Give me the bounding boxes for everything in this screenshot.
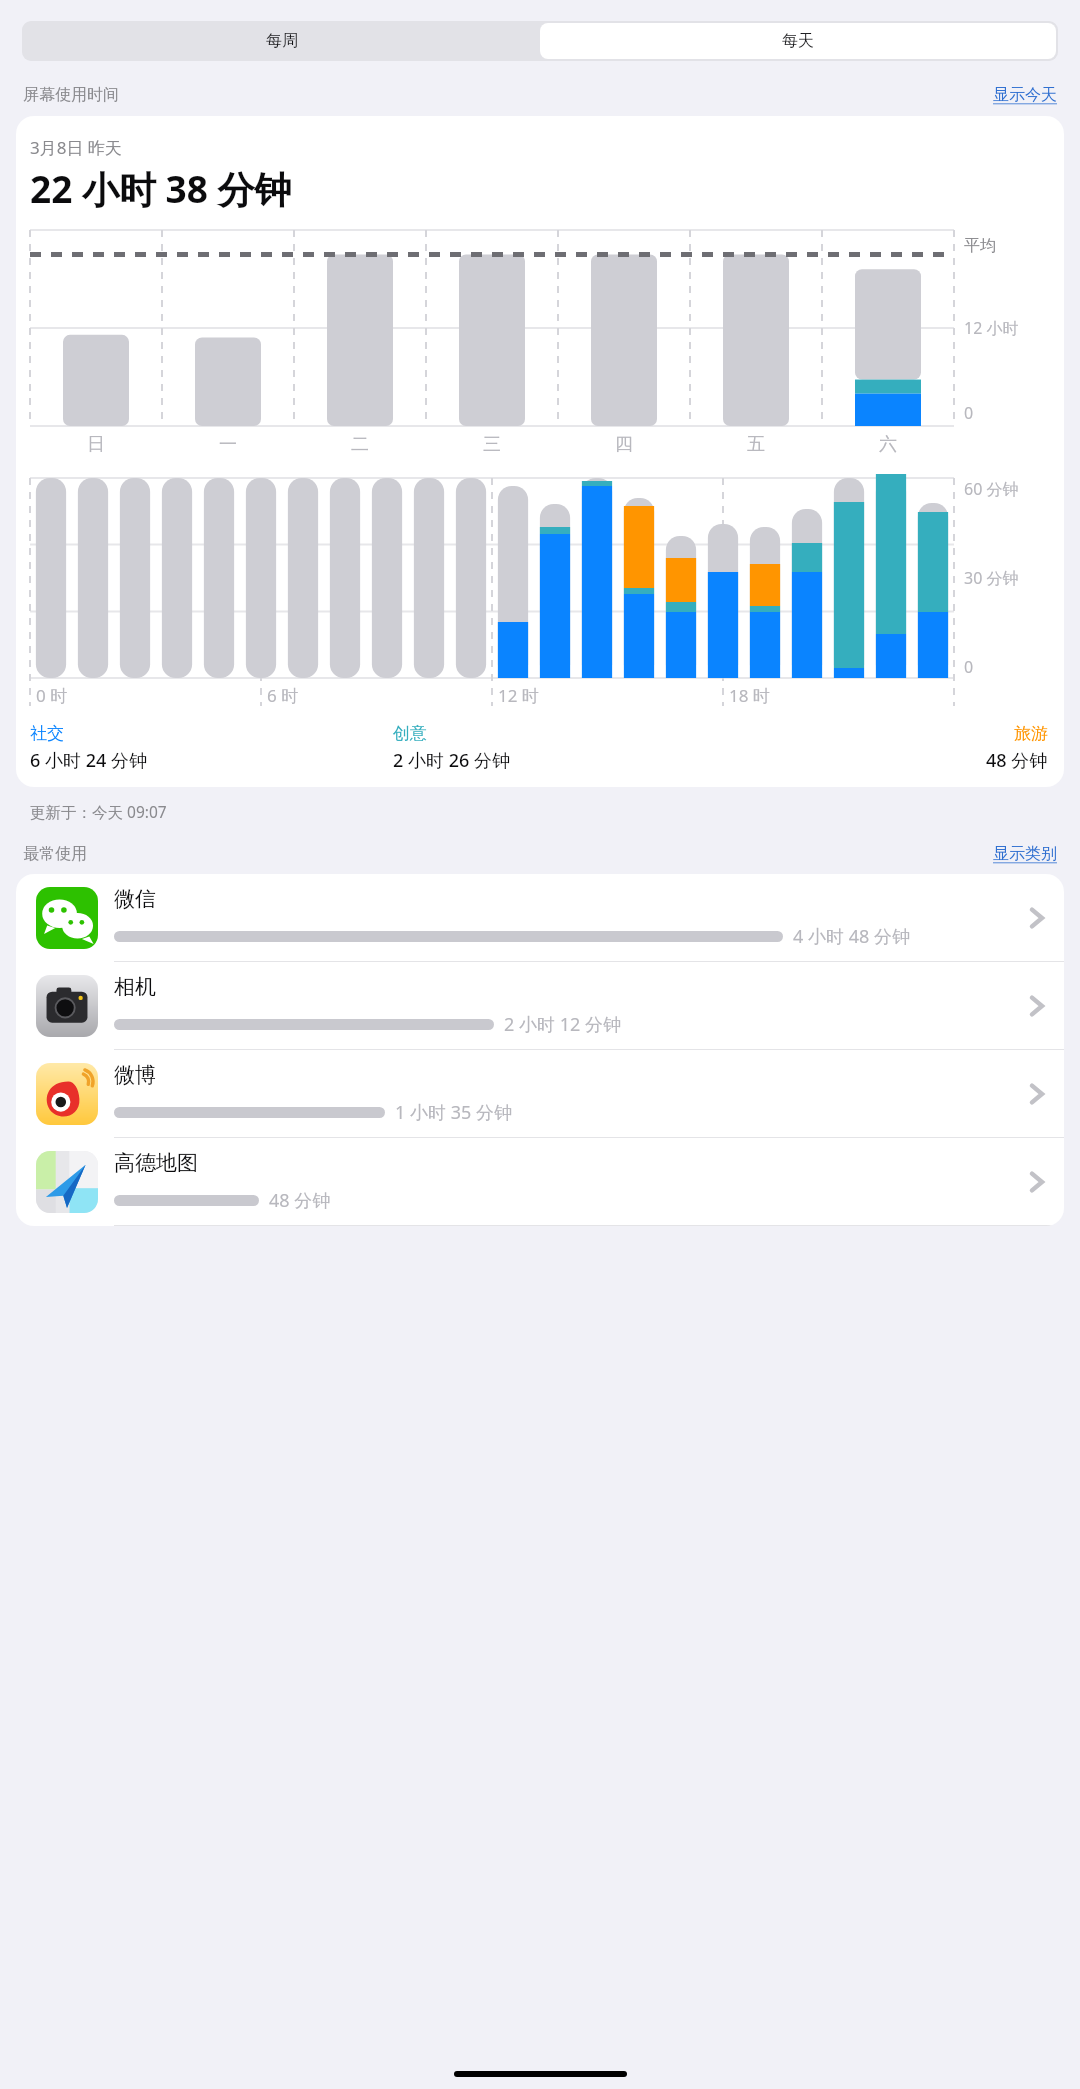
staticText: 创意 [393,723,427,744]
staticText: 高德地图 [114,1150,198,1176]
staticText: 每周 [266,31,298,51]
staticText: 二 [351,433,369,456]
staticText: 每天 [782,31,814,51]
staticText: 日 [87,433,105,456]
staticText: 18 时 [729,684,770,707]
other: 查看 微信 详情 [1024,905,1050,931]
button[interactable]: 显示类别 [993,844,1057,864]
staticText: 2 小时 12 分钟 [504,1012,621,1037]
staticText: 22 小时 38 分钟 [30,163,292,214]
staticText: 旅游 [1014,723,1048,744]
staticText: 12 小时 [964,317,1019,339]
staticText: 微信 [114,886,156,912]
staticText: 显示类别 [993,844,1057,864]
staticText: 显示今天 [993,85,1057,105]
staticText: 6 小时 24 分钟 [30,748,147,773]
button[interactable]: 相机 [16,962,1064,1049]
staticText: 微博 [114,1062,156,1088]
button[interactable]: 显示今天 [993,85,1057,105]
staticText: 30 分钟 [964,567,1019,589]
button[interactable]: 社交 [30,723,393,773]
staticText: 最常使用 [23,844,87,864]
staticText: 相机 [114,974,156,1000]
button[interactable]: 创意 [393,723,757,773]
staticText: 0 [964,656,974,678]
staticText: 48 分钟 [269,1188,331,1213]
staticText: 六 [879,433,897,456]
other: 查看 相机 详情 [1024,993,1050,1019]
staticText: 平均 [964,236,996,256]
staticText: 0 时 [36,684,68,707]
staticText: 48 分钟 [986,748,1048,773]
staticText: 三 [483,433,501,456]
button[interactable]: 高德地图 [16,1138,1064,1225]
staticText: 60 分钟 [964,478,1019,500]
button[interactable]: 3月8日 昨天 [16,116,1064,787]
staticText: 社交 [30,723,64,744]
staticText: 一 [219,433,237,456]
staticText: 0 [964,402,974,424]
staticText: 1 小时 35 分钟 [395,1100,512,1125]
button[interactable]: 每周 [24,23,540,59]
button[interactable]: 微博 [16,1050,1064,1137]
button[interactable]: 旅游 [757,723,1048,773]
other: 查看 微博 详情 [1024,1081,1050,1107]
staticText: 屏幕使用时间 [23,85,119,105]
staticText: 6 时 [267,684,299,707]
other: 查看 高德地图 详情 [1024,1169,1050,1195]
staticText: 五 [747,433,765,456]
button[interactable]: 每天 [540,23,1056,59]
staticText: 2 小时 26 分钟 [393,748,510,773]
button[interactable]: 微信 [16,874,1064,961]
staticText: 四 [615,433,633,456]
staticText: 12 时 [498,684,539,707]
staticText: 更新于：今天 09:07 [30,801,167,822]
staticText: 4 小时 48 分钟 [793,924,910,949]
staticText: 3月8日 昨天 [30,136,122,159]
